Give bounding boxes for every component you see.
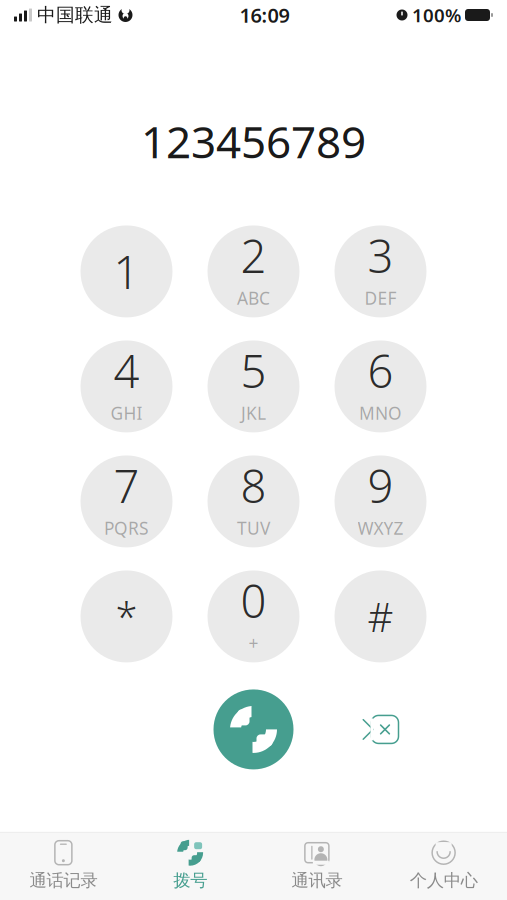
button[interactable]: 3 [334,225,426,317]
staticText: 1 [113,241,139,301]
staticText: 3 [367,225,393,285]
staticText: 8 [240,455,266,515]
staticText: WXYZ [357,516,403,539]
staticText: 0 [240,570,266,630]
staticText: 通讯录 [291,870,342,891]
button[interactable]: Call [213,689,293,769]
button[interactable]: 4 [80,340,172,432]
button[interactable]: 个人中心 [380,833,507,900]
staticText: 16:09 [239,2,289,28]
button[interactable]: 1 [80,225,172,317]
button[interactable]: 7 [80,455,172,547]
staticText: 个人中心 [410,870,478,891]
button[interactable]: 5 [207,340,299,432]
button[interactable]: 0 [207,570,299,662]
staticText: 通话记录 [29,870,97,891]
button[interactable]: 6 [334,340,426,432]
staticText: 4 [113,340,139,400]
button[interactable]: 8 [207,455,299,547]
staticText: 6 [367,340,393,400]
button[interactable]: 9 [334,455,426,547]
staticText: MNO [359,401,402,424]
staticText: 9 [367,455,393,515]
staticText: 100% [412,3,461,27]
staticText: * [115,590,137,643]
staticText: TUV [237,516,270,539]
staticText: GHI [110,401,142,424]
button[interactable]: 2 [207,225,299,317]
staticText: 7 [113,455,139,515]
staticText: + [248,631,258,654]
button[interactable]: # [334,570,426,662]
staticText: ABC [237,286,270,309]
staticText: 5 [240,340,266,400]
button[interactable]: 通讯录 [253,833,380,900]
staticText: JKL [241,401,266,424]
staticText: 拨号 [173,870,207,891]
staticText: PQRS [104,516,149,539]
staticText: # [367,590,393,643]
button[interactable]: * [80,570,172,662]
staticText: 2 [240,225,266,285]
button[interactable]: Delete [344,699,416,759]
staticText: 123456789 [141,112,366,170]
staticText: 中国联通 [37,3,113,26]
button[interactable]: 通话记录 [0,833,127,900]
button[interactable]: 拨号 [127,833,254,900]
staticText: DEF [364,286,396,309]
